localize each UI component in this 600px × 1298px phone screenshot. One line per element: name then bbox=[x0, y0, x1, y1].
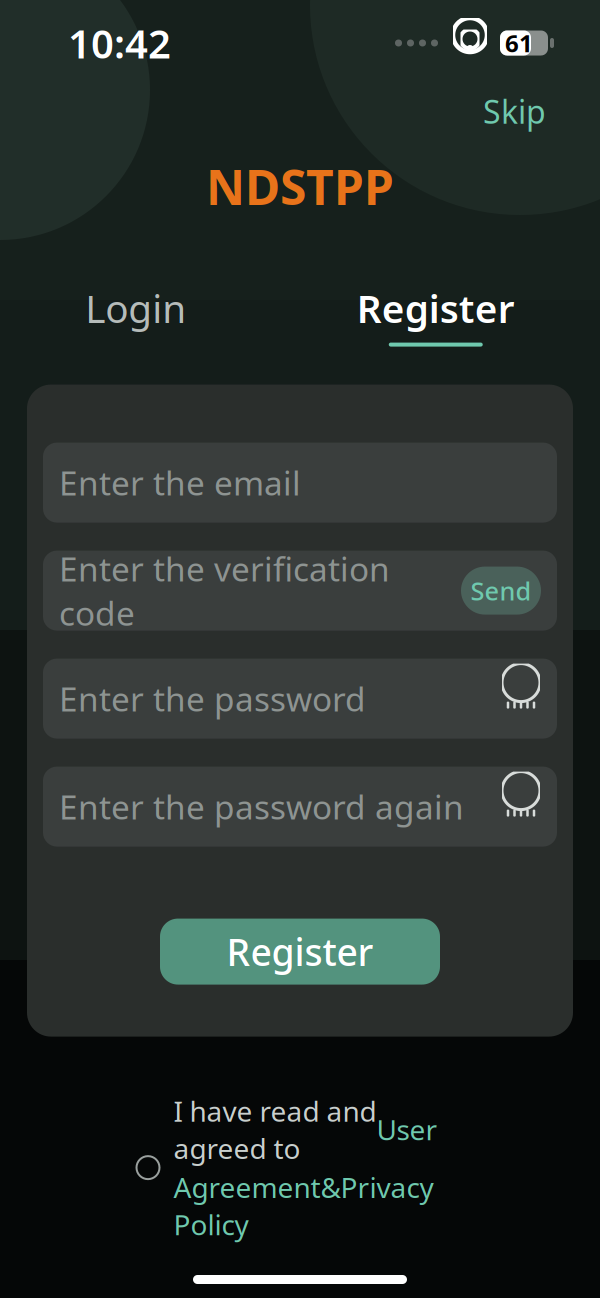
staticText: Enter the password again bbox=[59, 784, 464, 829]
button[interactable]: Login bbox=[65, 276, 206, 352]
button[interactable]: Show password bbox=[499, 679, 543, 719]
staticText: Send bbox=[470, 574, 531, 607]
button[interactable]: Register bbox=[337, 276, 535, 352]
staticText: NDSTPP bbox=[206, 154, 394, 218]
staticText: 10:42 bbox=[68, 16, 171, 69]
staticText: User bbox=[376, 1111, 437, 1148]
staticText: Enter the password bbox=[59, 676, 366, 721]
button[interactable]: I have read and agreed to bbox=[128, 1086, 471, 1249]
staticText: Login bbox=[85, 282, 186, 333]
staticText: Skip bbox=[483, 90, 546, 132]
staticText: Agreement&Privacy Policy bbox=[173, 1169, 433, 1243]
staticText: Register bbox=[226, 927, 373, 976]
button[interactable]: Send bbox=[461, 567, 541, 615]
staticText: Register bbox=[357, 282, 515, 333]
staticText: Enter the email bbox=[59, 460, 301, 505]
staticText: I have read and agreed to bbox=[173, 1092, 376, 1167]
button[interactable]: Register bbox=[160, 919, 440, 985]
button[interactable]: Show password bbox=[499, 787, 543, 827]
button[interactable]: Skip bbox=[469, 84, 560, 138]
staticText: 61 bbox=[505, 27, 533, 59]
staticText: Enter the verification code bbox=[59, 546, 390, 635]
